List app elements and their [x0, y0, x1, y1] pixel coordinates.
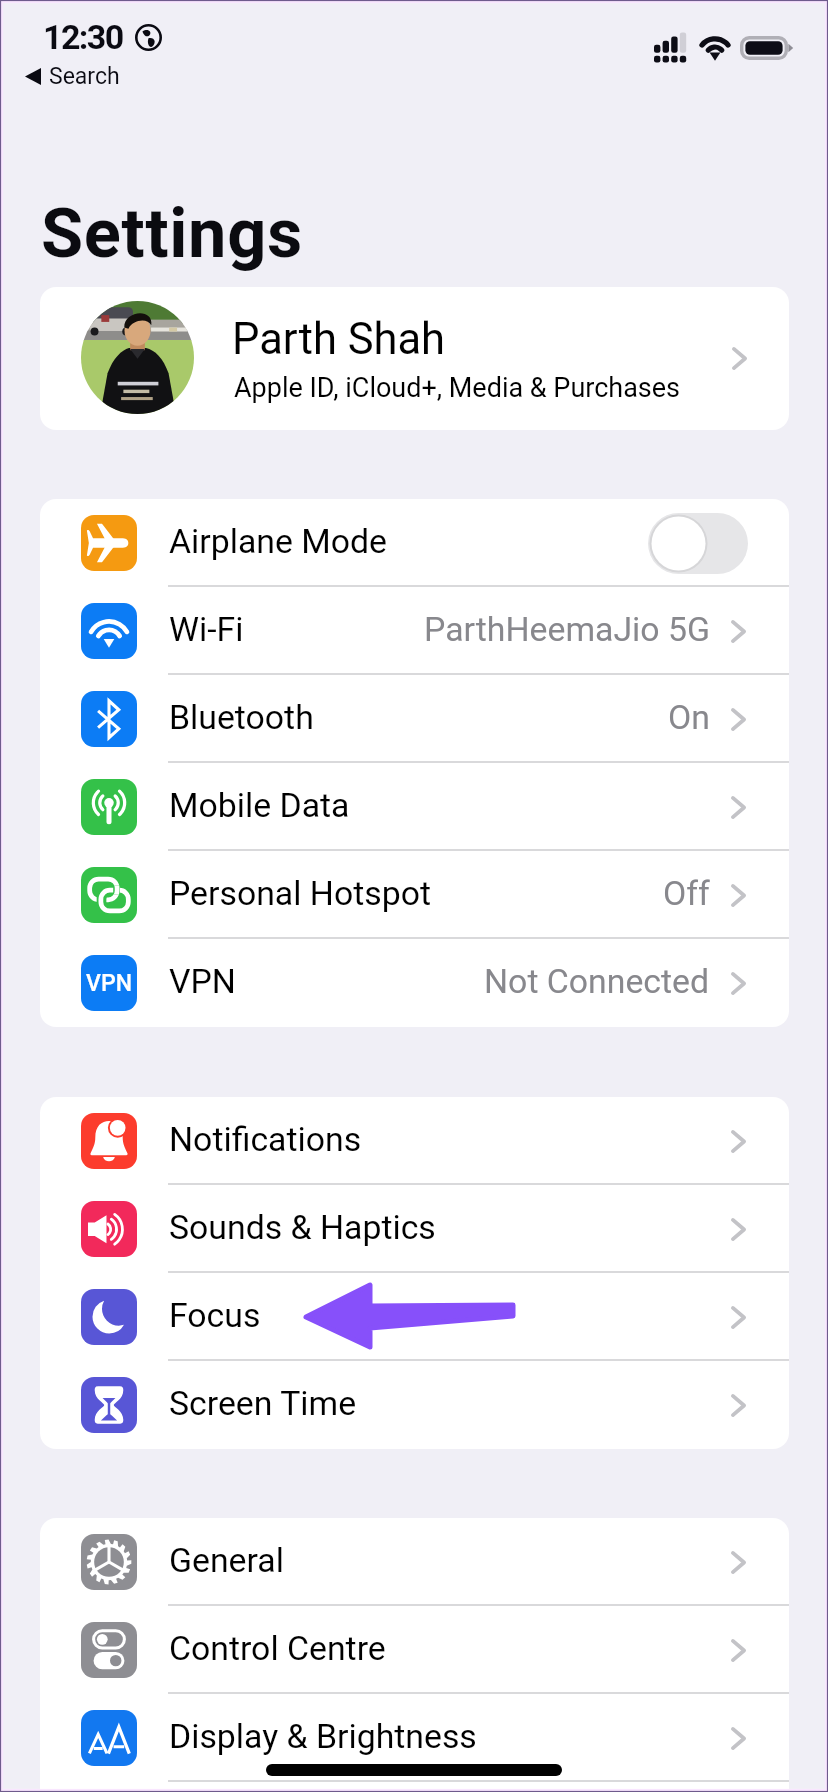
- button[interactable]: Mobile Data: [40, 763, 789, 851]
- staticText: Mobile Data: [169, 786, 350, 826]
- staticText: VPN: [86, 970, 132, 997]
- staticText: Sounds & Haptics: [169, 1208, 436, 1248]
- staticText: Control Centre: [169, 1629, 386, 1669]
- other: Cellular signal: [654, 31, 690, 63]
- staticText: Off: [663, 874, 710, 914]
- button[interactable]: Sounds & Haptics: [40, 1185, 789, 1273]
- staticText: Focus: [169, 1296, 261, 1336]
- staticText: Settings: [41, 193, 303, 273]
- button[interactable]: Wi-Fi: [40, 587, 789, 675]
- staticText: Airplane Mode: [169, 522, 388, 562]
- staticText: Not Connected: [484, 962, 710, 1002]
- staticText: Screen Time: [169, 1384, 357, 1424]
- staticText: General: [169, 1541, 284, 1581]
- staticText: Personal Hotspot: [169, 874, 432, 914]
- button[interactable]: Wallpaper: [40, 1782, 789, 1792]
- staticText: Search: [49, 63, 120, 90]
- button[interactable]: Screen Time: [40, 1361, 789, 1449]
- button[interactable]: Notifications: [40, 1097, 789, 1185]
- staticText: VPN: [169, 962, 236, 1002]
- button[interactable]: Personal Hotspot: [40, 851, 789, 939]
- staticText: On: [668, 698, 710, 738]
- button[interactable]: Focus: [40, 1273, 789, 1361]
- staticText: Apple ID, iCloud+, Media & Purchases: [234, 372, 681, 404]
- button[interactable]: VPN: [40, 939, 789, 1027]
- staticText: Display & Brightness: [169, 1717, 477, 1757]
- staticText: Wi-Fi: [169, 610, 244, 650]
- button[interactable]: Bluetooth: [40, 675, 789, 763]
- button[interactable]: Control Centre: [40, 1606, 789, 1694]
- other: Battery: [740, 36, 794, 61]
- button[interactable]: Airplane Mode: [40, 499, 789, 587]
- other: Wi-Fi: [698, 34, 732, 61]
- staticText: ParthHeemaJio 5G: [424, 610, 710, 650]
- staticText: 12:30: [43, 17, 123, 57]
- button[interactable]: General: [40, 1518, 789, 1606]
- staticText: Parth Shah: [232, 314, 446, 365]
- button[interactable]: Display & Brightness: [40, 1694, 789, 1782]
- staticText: Notifications: [169, 1120, 362, 1160]
- button[interactable]: Parth Shah: [40, 287, 789, 430]
- staticText: Bluetooth: [169, 698, 314, 738]
